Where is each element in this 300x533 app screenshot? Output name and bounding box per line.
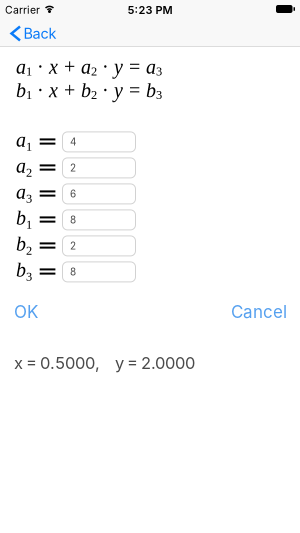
staticText: 8	[70, 214, 76, 226]
staticText: 4	[70, 136, 76, 148]
staticText: a1 · x + a2 · y = a3	[16, 54, 162, 78]
staticText: 5:23 PM	[127, 3, 172, 17]
button[interactable]: b3 value	[62, 261, 136, 282]
staticText: x = 0.5000, y = 2.0000	[14, 353, 195, 373]
staticText: Carrier	[5, 4, 40, 16]
button[interactable]: Back	[0, 24, 56, 42]
button[interactable]: Cancel	[231, 301, 287, 322]
staticText: b1 · x + b2 · y = b3	[16, 77, 162, 102]
button[interactable]: a1 value	[62, 131, 136, 152]
staticText: 2	[70, 240, 76, 252]
staticText: b1	[16, 207, 32, 231]
staticText: Back	[23, 25, 56, 42]
staticText: OK	[14, 301, 38, 322]
staticText: 6	[70, 188, 76, 200]
staticText: b3	[16, 259, 32, 283]
button[interactable]: b2 value	[62, 235, 136, 256]
staticText: 2	[70, 162, 76, 174]
staticText: Cancel	[231, 301, 287, 322]
button[interactable]: b1 value	[62, 209, 136, 230]
button[interactable]: OK	[14, 301, 38, 322]
staticText: a3	[16, 181, 32, 205]
staticText: b2	[16, 233, 32, 257]
staticText: a1	[16, 129, 32, 153]
button[interactable]: a3 value	[62, 183, 136, 204]
staticText: a2	[16, 155, 32, 179]
staticText: 8	[70, 266, 76, 278]
button[interactable]: a2 value	[62, 157, 136, 178]
